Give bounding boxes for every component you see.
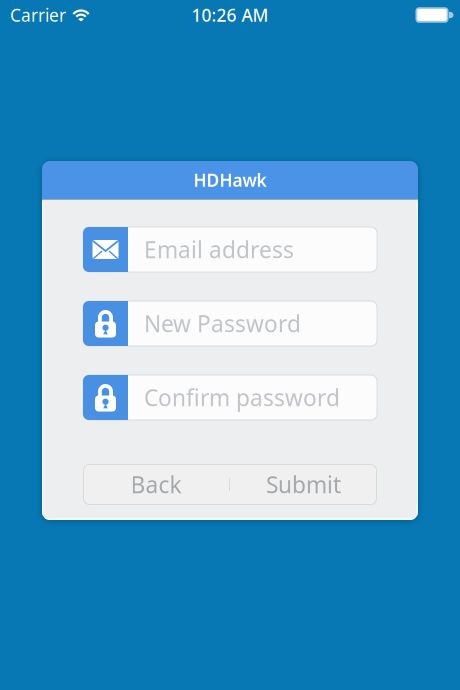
button[interactable]: Submit	[230, 464, 377, 505]
button[interactable]: Back	[83, 464, 229, 505]
staticText: HDHawk	[193, 168, 266, 191]
button[interactable]: Email address	[83, 227, 377, 272]
staticText: Back	[130, 469, 181, 499]
staticText: Email address	[144, 234, 294, 264]
staticText: Submit	[266, 469, 341, 499]
staticText: Carrier	[10, 3, 66, 26]
staticText: Confirm password	[144, 382, 340, 412]
staticText: 10:26 AM	[191, 3, 268, 26]
button[interactable]: New Password	[83, 301, 377, 346]
staticText: New Password	[144, 308, 301, 338]
button[interactable]: Confirm password	[83, 375, 377, 420]
